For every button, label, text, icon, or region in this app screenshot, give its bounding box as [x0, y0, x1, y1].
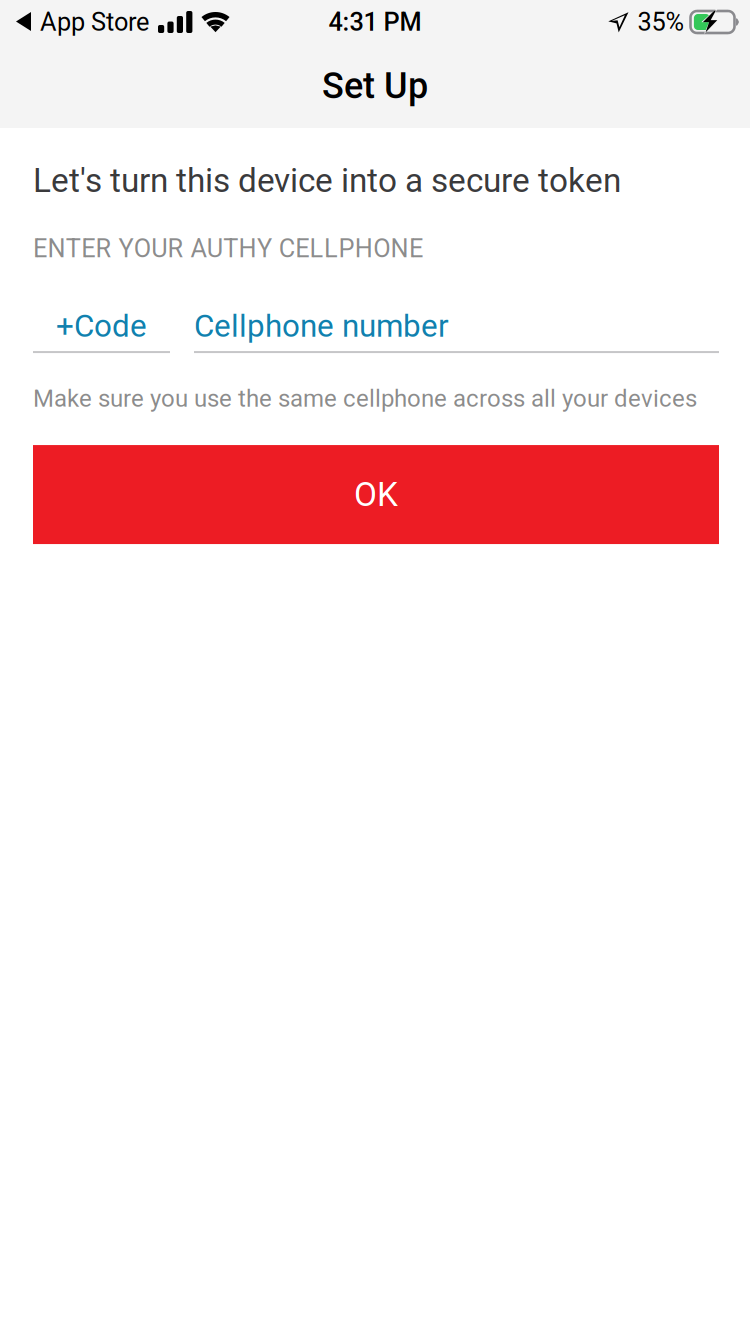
button[interactable]: Cellphone number — [194, 303, 719, 353]
staticText: App Store — [40, 7, 149, 37]
staticText: ENTER YOUR AUTHY CELLPHONE — [33, 234, 423, 263]
button[interactable]: OK — [33, 445, 719, 544]
staticText: +Code — [56, 308, 147, 344]
staticText: Let's turn this device into a secure tok… — [33, 161, 621, 200]
staticText: 35% — [637, 7, 684, 37]
staticText: Set Up — [322, 65, 428, 107]
staticText: OK — [354, 475, 398, 514]
button[interactable]: Set Up — [0, 44, 750, 128]
staticText: Make sure you use the same cellphone acr… — [33, 384, 697, 413]
button[interactable]: +Code — [33, 303, 170, 353]
staticText: Cellphone number — [194, 308, 449, 344]
staticText: 4:31 PM — [328, 7, 421, 37]
